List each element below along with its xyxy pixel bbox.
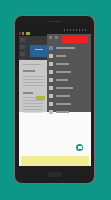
button[interactable]: Present bbox=[76, 144, 83, 151]
button[interactable] bbox=[47, 92, 91, 100]
button[interactable] bbox=[47, 44, 91, 52]
button[interactable] bbox=[47, 84, 91, 92]
button[interactable] bbox=[62, 36, 88, 43]
button[interactable] bbox=[47, 100, 91, 108]
button[interactable] bbox=[47, 76, 91, 84]
button[interactable] bbox=[47, 108, 91, 116]
button[interactable] bbox=[47, 52, 91, 60]
button[interactable] bbox=[47, 68, 91, 76]
button[interactable] bbox=[47, 60, 91, 68]
